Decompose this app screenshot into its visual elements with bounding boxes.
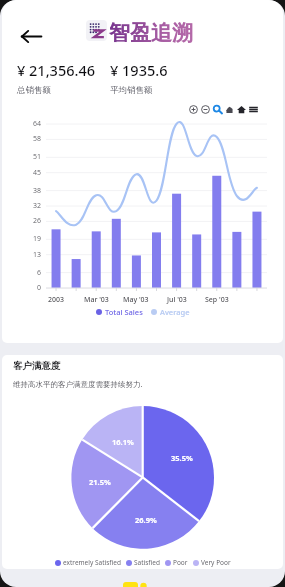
button[interactable]: Back (17, 22, 45, 50)
button[interactable]: Home (235, 103, 247, 115)
staticText: 总销售额 (17, 85, 51, 96)
staticText: 0 (37, 283, 42, 293)
staticText: 64 (33, 119, 42, 129)
staticText: Very Poor (201, 558, 231, 567)
staticText: May '03 (123, 295, 149, 305)
button[interactable]: Zoom in (187, 103, 199, 115)
staticText: 26.9% (135, 515, 157, 525)
staticText: 13 (33, 250, 42, 260)
staticText: Jul '03 (167, 295, 187, 305)
staticText: Satisfied (134, 558, 160, 567)
staticText: 51 (33, 152, 42, 162)
staticText: 26 (33, 216, 42, 226)
staticText: 45 (33, 168, 42, 178)
staticText: Poor (173, 558, 188, 567)
staticText: Mar '03 (84, 295, 109, 305)
staticText: 智盈追溯 (109, 20, 193, 46)
staticText: 35.5% (171, 453, 193, 463)
staticText: 58 (33, 134, 42, 144)
staticText: 客户满意度 (13, 360, 61, 372)
staticText: Total Sales (105, 307, 143, 317)
staticText: 维持高水平的客户满意度需要持续努力. (13, 379, 143, 389)
staticText: 2003 (48, 295, 65, 305)
staticText: 平均销售额 (110, 85, 153, 96)
button[interactable]: Menu (247, 103, 259, 115)
button[interactable]: Zoom out (199, 103, 211, 115)
staticText: extremely Satisfied (63, 558, 121, 567)
staticText: 21.5% (89, 477, 111, 487)
staticText: 19 (33, 234, 42, 244)
staticText: ¥ 1935.6 (110, 60, 168, 80)
staticText: ¥ 21,356.46 (17, 60, 96, 80)
staticText: 6 (37, 268, 42, 278)
staticText: 38 (33, 186, 42, 196)
staticText: 16.1% (112, 437, 134, 447)
button[interactable]: Pan (223, 103, 235, 115)
staticText: Sep '03 (205, 295, 229, 305)
button[interactable]: Zoom selection (211, 103, 223, 115)
staticText: 32 (33, 201, 42, 211)
staticText: Average (160, 307, 190, 317)
